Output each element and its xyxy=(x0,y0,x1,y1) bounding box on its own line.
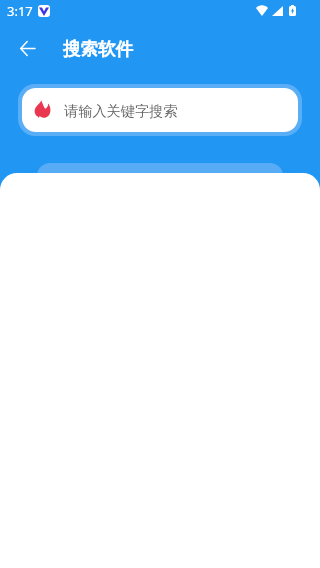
staticText: 3:17 xyxy=(7,2,33,20)
staticText: 请输入关键字搜索 xyxy=(64,102,178,120)
staticText: 搜索软件 xyxy=(63,38,133,60)
button[interactable]: Back xyxy=(9,30,45,66)
button[interactable]: 请输入关键字搜索 xyxy=(22,88,298,132)
